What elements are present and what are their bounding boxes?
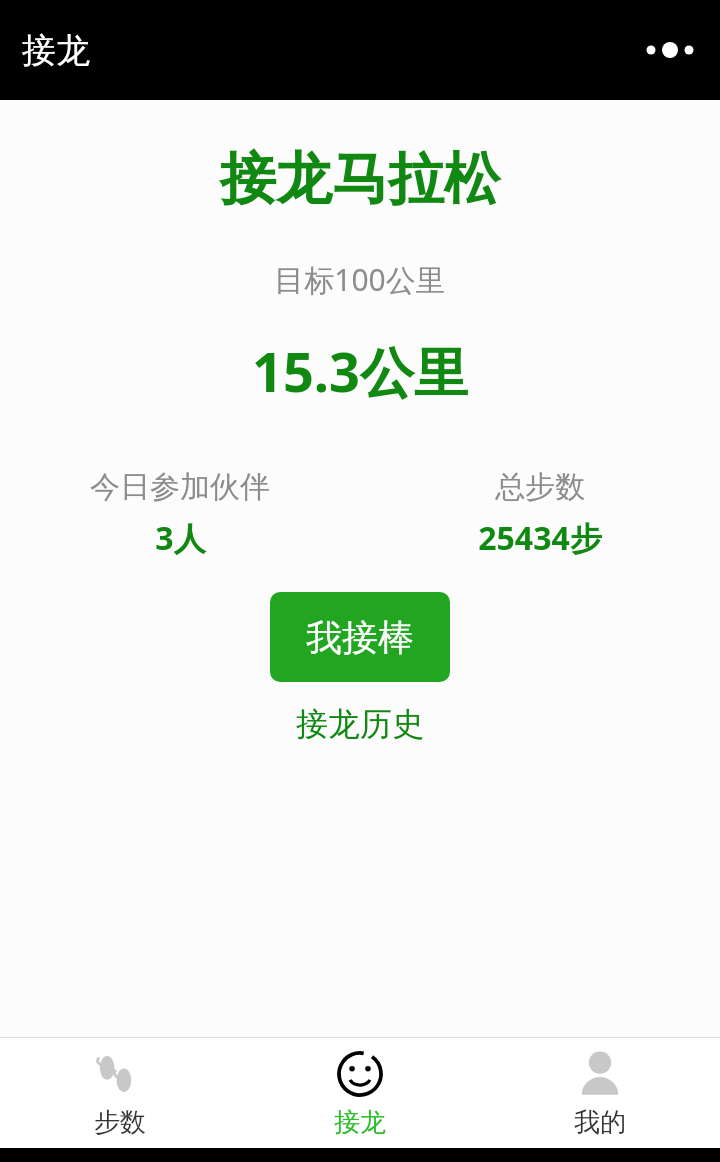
button[interactable]: 总步数 xyxy=(360,468,720,560)
staticText: 我的 xyxy=(574,1106,626,1139)
staticText: 目标100公里 xyxy=(274,259,446,300)
other: Relay xyxy=(335,1049,385,1099)
staticText: 接龙 xyxy=(334,1106,386,1139)
staticText: 接龙历史 xyxy=(296,704,424,744)
button[interactable]: More options xyxy=(640,20,700,80)
staticText: 接龙马拉松 xyxy=(220,144,500,215)
other: Profile xyxy=(574,1048,626,1100)
button[interactable]: Steps xyxy=(0,1037,240,1148)
staticText: 今日参加伙伴 xyxy=(90,468,270,506)
button[interactable]: Relay xyxy=(240,1037,480,1148)
staticText: 接龙 xyxy=(22,29,90,72)
staticText: 25434步 xyxy=(478,516,602,560)
button[interactable]: 接龙 xyxy=(22,29,90,72)
button[interactable]: Profile xyxy=(480,1037,720,1148)
staticText: 3人 xyxy=(155,516,206,560)
button[interactable]: 我接棒 xyxy=(270,592,450,682)
staticText: 我接棒 xyxy=(306,615,414,660)
staticText: 总步数 xyxy=(495,468,585,506)
staticText: 步数 xyxy=(94,1106,146,1139)
button[interactable]: 今日参加伙伴 xyxy=(0,468,360,560)
button[interactable]: 接龙历史 xyxy=(286,700,434,748)
staticText: 15.3公里 xyxy=(252,334,468,408)
other: Steps xyxy=(92,1046,148,1102)
